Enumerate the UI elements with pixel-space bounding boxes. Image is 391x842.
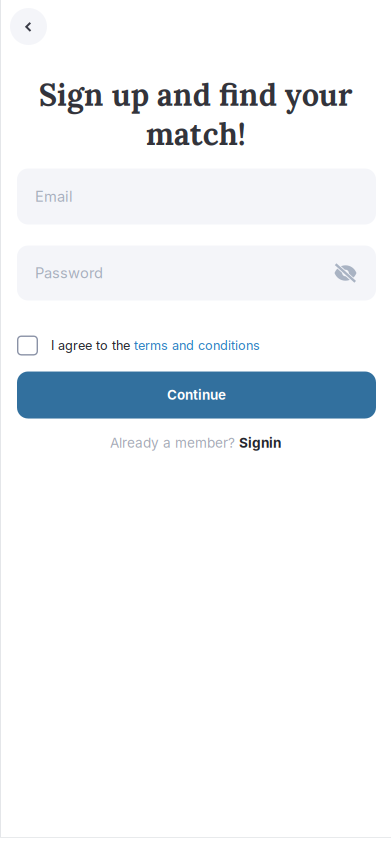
button[interactable]: Agree to terms and conditions xyxy=(17,335,38,355)
staticText: Email xyxy=(35,188,73,205)
staticText: Sign up and find your match! xyxy=(38,75,352,153)
staticText: Signin xyxy=(239,434,281,451)
button[interactable]: Signin xyxy=(239,434,281,451)
button[interactable]: Back xyxy=(10,8,47,45)
button[interactable]: Show password xyxy=(335,263,356,283)
button[interactable]: terms and conditions xyxy=(134,338,260,353)
button[interactable]: Continue xyxy=(17,371,376,418)
staticText: Password xyxy=(35,264,103,282)
staticText: Already a member? xyxy=(110,434,239,451)
staticText: terms and conditions xyxy=(134,338,260,353)
staticText: I agree to the xyxy=(51,338,134,353)
staticText: Continue xyxy=(167,387,226,403)
